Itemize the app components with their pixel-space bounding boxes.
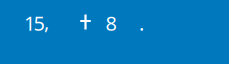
staticText: . [139,10,144,36]
staticText: , [44,8,49,35]
button[interactable]: 15, plus 8 [0,0,229,64]
staticText: 1 [24,10,35,36]
staticText: 5 [33,10,44,36]
staticText: 8 [105,10,116,36]
